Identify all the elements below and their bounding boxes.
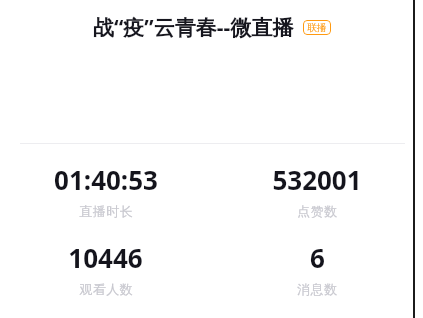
button[interactable]: 6 <box>211 240 423 297</box>
staticText: 01:40:53 <box>54 162 158 197</box>
staticText: 联播 <box>307 21 327 34</box>
button[interactable]: 10446 <box>0 240 211 297</box>
staticText: 观看人数 <box>79 281 133 297</box>
button[interactable]: 联播 <box>303 20 331 35</box>
staticText: 点赞数 <box>297 203 338 219</box>
staticText: 6 <box>310 240 325 275</box>
staticText: 532001 <box>272 162 362 197</box>
staticText: 战“疫”云青春--微直播 <box>93 13 294 42</box>
staticText: 10446 <box>68 240 143 275</box>
button[interactable]: 532001 <box>211 162 423 219</box>
staticText: 直播时长 <box>79 203 133 219</box>
button[interactable]: 01:40:53 <box>0 162 211 219</box>
staticText: 消息数 <box>297 281 338 297</box>
